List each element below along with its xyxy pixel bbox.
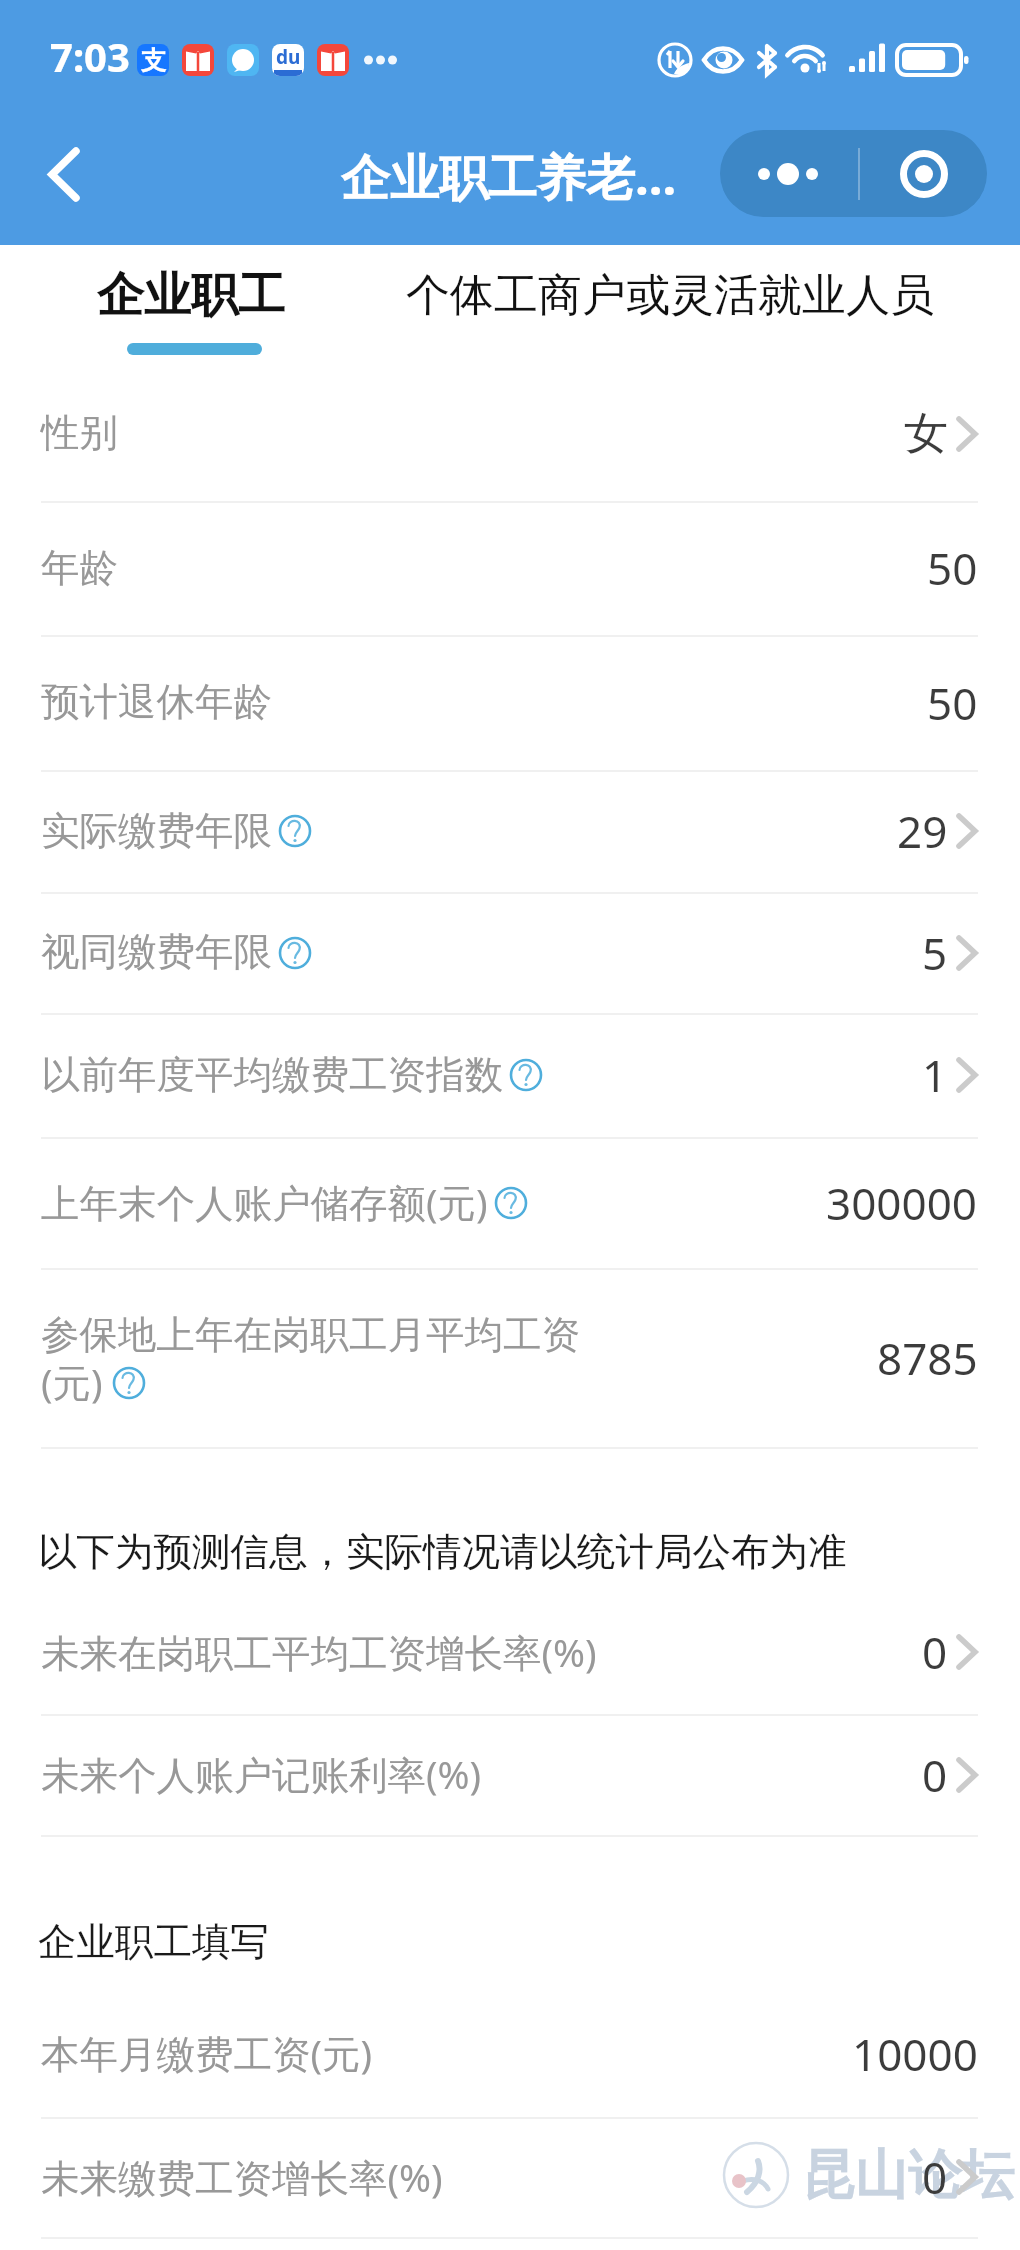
button[interactable]: 上年末个人账户储存额(元) [0, 1137, 1020, 1268]
staticText: 支 [141, 45, 166, 76]
staticText: 29 [897, 801, 948, 861]
staticText: 女 [904, 406, 948, 461]
button[interactable]: 本年月缴费工资(元) [0, 1990, 1020, 2117]
staticText: 0 [922, 2147, 948, 2207]
button[interactable]: 性别 [0, 366, 1020, 501]
button[interactable]: Back [7, 112, 121, 237]
button[interactable]: 预计退休年龄 [0, 635, 1020, 770]
staticText: 未来个人账户记账利率(%) [41, 1748, 482, 1801]
staticText: 预计退休年龄 [41, 678, 272, 727]
staticText: 8785 [877, 1328, 978, 1388]
button[interactable]: 未来个人账户记账利率(%) [0, 1714, 1020, 1835]
staticText: 未来在岗职工平均工资增长率(%) [41, 1626, 597, 1679]
staticText: 企业职工 [97, 266, 285, 325]
button[interactable]: 年龄 [0, 501, 1020, 635]
button[interactable]: 以前年度平均缴费工资指数 [0, 1013, 1020, 1137]
button[interactable]: 未来缴费工资增长率(%) [0, 2117, 1020, 2237]
staticText: 企业职工养老... [341, 143, 677, 210]
button[interactable]: 企业职工 [70, 245, 314, 366]
staticText: 企业职工填写 [38, 1918, 269, 1967]
staticText: 7:03 [50, 29, 130, 83]
staticText: 0 [922, 1622, 948, 1682]
staticText: 以前年度平均缴费工资指数 [41, 1051, 503, 1100]
staticText: 个体工商户或灵活就业人员 [406, 268, 934, 323]
button[interactable]: 未来在岗职工平均工资增长率(%) [0, 1590, 1020, 1714]
staticText: 50 [927, 538, 978, 598]
staticText: 5 [922, 923, 948, 983]
button[interactable]: Close [860, 130, 987, 217]
staticText: 以下为预测信息，实际情况请以统计局公布为准 [38, 1528, 847, 1577]
staticText: 10000 [852, 2024, 978, 2084]
button[interactable]: 视同缴费年限 [0, 892, 1020, 1013]
button[interactable]: 个体工商户或灵活就业人员 [360, 245, 960, 366]
button[interactable]: 参保地上年在岗职工月平均工资 [0, 1268, 1020, 1447]
staticText: 本年月缴费工资(元) [41, 2027, 373, 2080]
staticText: 实际缴费年限 [41, 807, 272, 856]
staticText: 参保地上年在岗职工月平均工资 [41, 1311, 580, 1360]
staticText: 性别 [41, 409, 118, 458]
staticText: 1 [922, 1045, 948, 1105]
staticText: 上年末个人账户储存额(元) [41, 1176, 488, 1229]
staticText: 未来缴费工资增长率(%) [41, 2151, 443, 2204]
button[interactable]: 实际缴费年限 [0, 770, 1020, 892]
staticText: (元) [41, 1356, 103, 1409]
staticText: 300000 [826, 1173, 978, 1233]
staticText: 50 [927, 673, 978, 733]
staticText: 0 [922, 1745, 948, 1805]
staticText: 年龄 [41, 544, 118, 593]
button[interactable]: More [720, 130, 858, 217]
staticText: du [276, 44, 301, 70]
staticText: 昆山论坛 [802, 2142, 1014, 2209]
staticText: 视同缴费年限 [41, 928, 272, 977]
